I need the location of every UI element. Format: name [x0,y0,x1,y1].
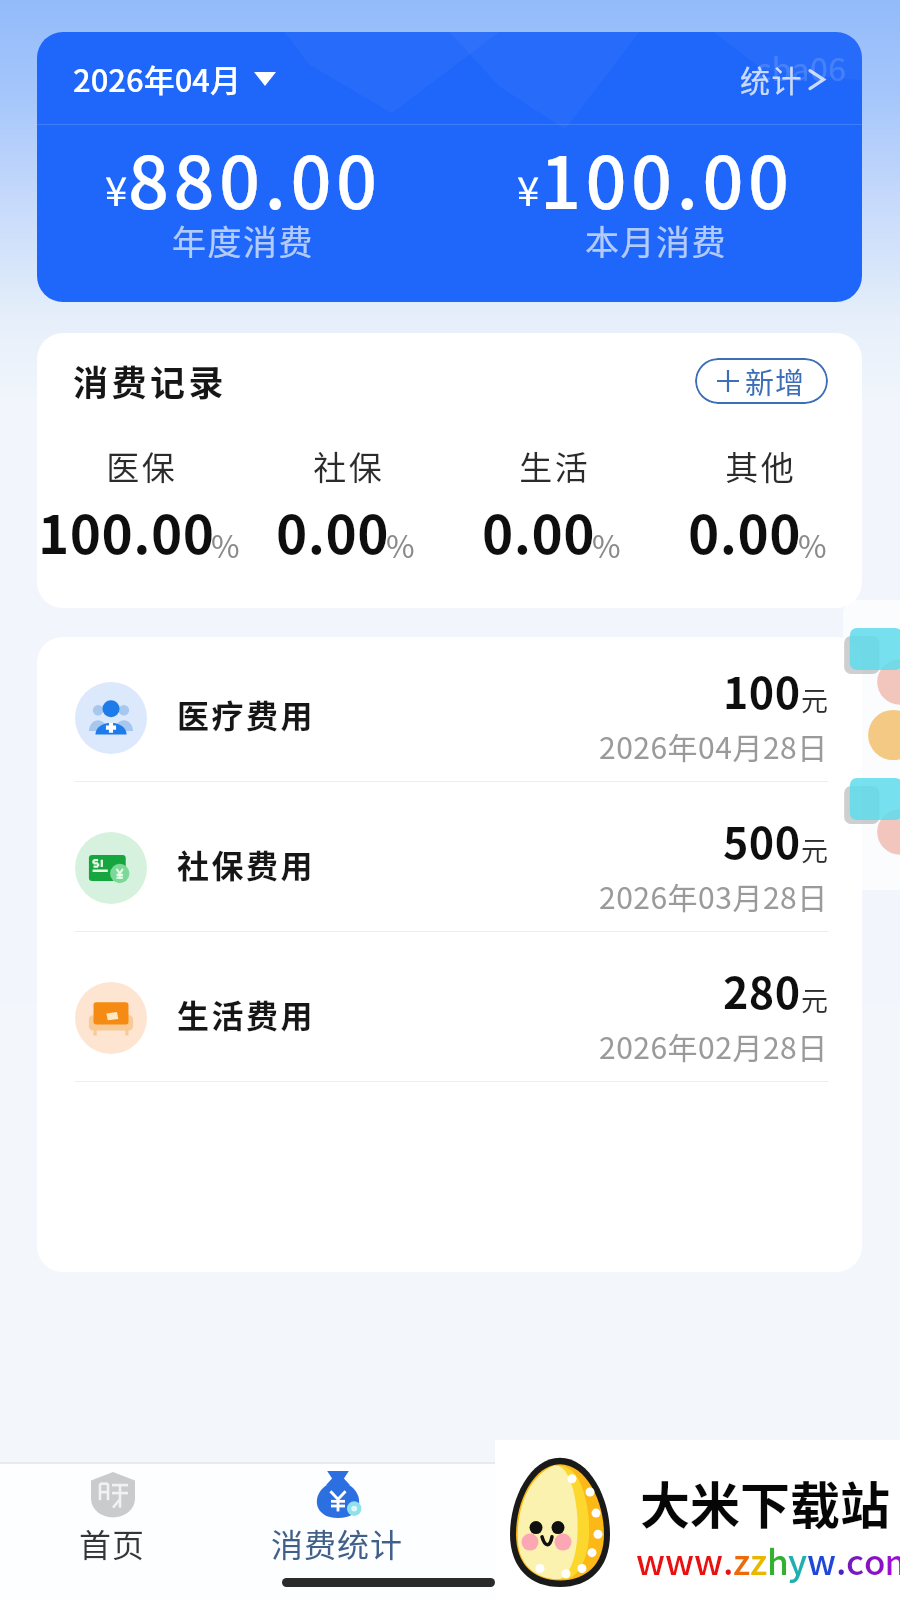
staticText: 100.00 [540,125,794,229]
staticText: 医保 [105,442,176,490]
staticText: 2026年04月28日 [599,724,828,767]
staticText: 2026年04月 [73,56,242,101]
staticText: 年度消费 [172,216,314,258]
other: 消费统计 [311,1471,365,1518]
staticText: 大米下载站 [640,1466,890,1538]
button[interactable]: 新增 [695,358,828,404]
staticText: w [665,1534,694,1585]
staticText: m [885,1534,896,1585]
staticText: 0.00 [276,493,390,570]
staticText: w [807,1534,836,1585]
button[interactable]: 2026年04月 [73,56,276,101]
staticText: 首页 [79,1520,146,1566]
staticText: . [836,1534,846,1585]
staticText: 元 [801,980,828,1019]
staticText: 元 [801,680,828,719]
staticText: z [750,1534,767,1585]
staticText: 880.00 [128,125,382,229]
staticText: o [864,1534,885,1585]
staticText: 消费记录 [73,355,228,406]
button[interactable]: 社保费用 [37,782,862,932]
staticText: ¥ [105,160,128,218]
button[interactable]: 消费统计 [225,1464,450,1577]
button[interactable]: 医疗费用 [37,646,862,782]
staticText: 元 [801,830,828,869]
staticText: . [723,1534,733,1585]
button[interactable]: 首页 [0,1464,225,1577]
staticText: % [592,522,621,567]
staticText: 2026年02月28日 [599,1024,828,1067]
staticText: 社保 [312,442,383,490]
other: 首页 [88,1471,138,1518]
staticText: 统计 [740,57,803,100]
staticText: 500 [723,809,801,871]
staticText: 0.00 [482,493,596,570]
staticText: 2026年03月28日 [599,874,828,917]
staticText: 100 [723,659,801,721]
staticText: cba06 [755,44,847,90]
staticText: ¥ [517,160,540,218]
staticText: % [798,522,827,567]
staticText: 医疗费用 [177,691,316,737]
button[interactable]: 统计 [740,57,828,100]
staticText: 100.00 [38,493,215,570]
staticText: 0.00 [688,493,802,570]
staticText: 社保费用 [177,841,316,887]
staticText: z [733,1534,750,1585]
staticText: 消费统计 [271,1520,404,1566]
staticText: 生活费用 [177,991,316,1037]
staticText: w [694,1534,723,1585]
staticText: % [386,522,415,567]
staticText: h [767,1534,788,1585]
staticText: 280 [723,959,801,1021]
button[interactable]: 生活费用 [37,932,862,1082]
staticText: 其他 [724,442,795,490]
staticText: % [211,522,240,567]
staticText: c [846,1534,864,1585]
staticText: y [788,1534,807,1585]
staticText: 生活 [518,442,589,490]
staticText: 新增 [745,360,806,402]
staticText: w [636,1534,665,1585]
staticText: 本月消费 [585,216,727,258]
